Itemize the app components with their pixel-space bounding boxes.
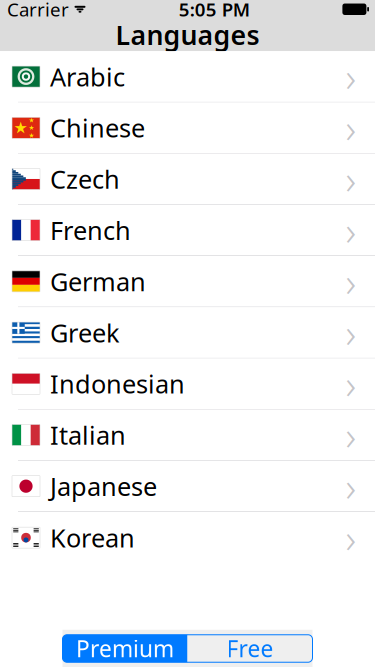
button[interactable]: Indonesian xyxy=(0,358,375,410)
staticText: ★ xyxy=(28,116,34,124)
staticText: French xyxy=(50,213,131,247)
staticText: › xyxy=(345,306,356,359)
staticText: Indonesian xyxy=(50,367,185,401)
button[interactable]: German xyxy=(0,256,375,307)
staticText: 5:05 PM xyxy=(179,0,250,22)
button[interactable]: Premium xyxy=(62,635,187,662)
staticText: Japanese xyxy=(50,469,157,503)
staticText: Free xyxy=(226,633,273,663)
staticText: › xyxy=(345,204,356,257)
button[interactable]: Greek xyxy=(0,307,375,358)
staticText: Korean xyxy=(50,521,135,554)
staticText: German xyxy=(50,265,146,298)
staticText: › xyxy=(345,357,356,410)
staticText: › xyxy=(345,408,356,461)
staticText: Czech xyxy=(50,162,120,196)
staticText: Chinese xyxy=(50,111,145,145)
button[interactable]: French xyxy=(0,205,375,256)
staticText: › xyxy=(345,101,356,154)
staticText: ★ xyxy=(28,132,34,139)
staticText: Arabic xyxy=(50,60,125,93)
button[interactable]: Free xyxy=(187,635,312,662)
staticText: › xyxy=(345,255,356,308)
staticText: Italian xyxy=(50,418,126,452)
button[interactable]: Arabic xyxy=(0,51,375,102)
staticText: ★ xyxy=(28,124,34,132)
button[interactable]: ★ xyxy=(0,102,375,154)
staticText: › xyxy=(345,511,356,564)
staticText: Carrier xyxy=(7,0,69,22)
staticText: Greek xyxy=(50,316,120,349)
staticText: › xyxy=(345,460,356,513)
button[interactable]: Korean xyxy=(0,512,375,563)
staticText: › xyxy=(345,152,356,205)
staticText: › xyxy=(345,50,356,103)
staticText: ★ xyxy=(13,119,27,137)
button[interactable]: Italian xyxy=(0,410,375,461)
button[interactable]: Czech xyxy=(0,154,375,205)
staticText: Languages xyxy=(115,17,259,52)
button[interactable]: Japanese xyxy=(0,461,375,512)
staticText: Premium xyxy=(76,633,174,663)
